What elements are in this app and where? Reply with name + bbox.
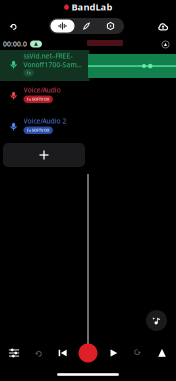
button[interactable]: Effects — [98, 19, 122, 32]
button[interactable]: Audio editor — [50, 19, 74, 32]
button[interactable]: Metronome — [151, 341, 173, 365]
button[interactable]: ssVid.net--FREE-Vonoff1700-Sampl... — [1, 50, 89, 81]
button[interactable]: Mixer — [3, 341, 25, 365]
button[interactable]: Back — [2, 15, 24, 37]
staticText: ssVid.net--FREE-Vonoff1700-Sampl... — [23, 51, 84, 69]
button[interactable]: AI tools — [146, 310, 167, 331]
button[interactable]: Redo — [127, 341, 149, 365]
button[interactable]: Metronome — [30, 40, 42, 47]
staticText: fx — [27, 70, 31, 75]
button[interactable]: Add track — [3, 143, 85, 167]
button[interactable]: Voice/Audio 2 — [1, 112, 89, 143]
staticText: BandLab — [71, 1, 112, 13]
button[interactable]: Edit — [74, 19, 98, 32]
button[interactable]: Record — [76, 341, 100, 365]
button[interactable]: Voice/Audio — [1, 81, 89, 112]
staticText: 00:00.0 — [3, 40, 27, 48]
button[interactable]: Skip to start — [52, 341, 74, 365]
button[interactable]: Upload — [152, 15, 174, 37]
button[interactable]: Undo — [27, 341, 49, 365]
staticText: Voice/Audio — [23, 85, 60, 94]
staticText: fx SOFTVOX — [27, 128, 50, 133]
staticText: fx SOFTVOX — [27, 97, 50, 102]
staticText: Voice/Audio 2 — [23, 116, 66, 125]
button[interactable]: Play — [102, 341, 124, 365]
button[interactable]: Track mute — [162, 41, 169, 48]
